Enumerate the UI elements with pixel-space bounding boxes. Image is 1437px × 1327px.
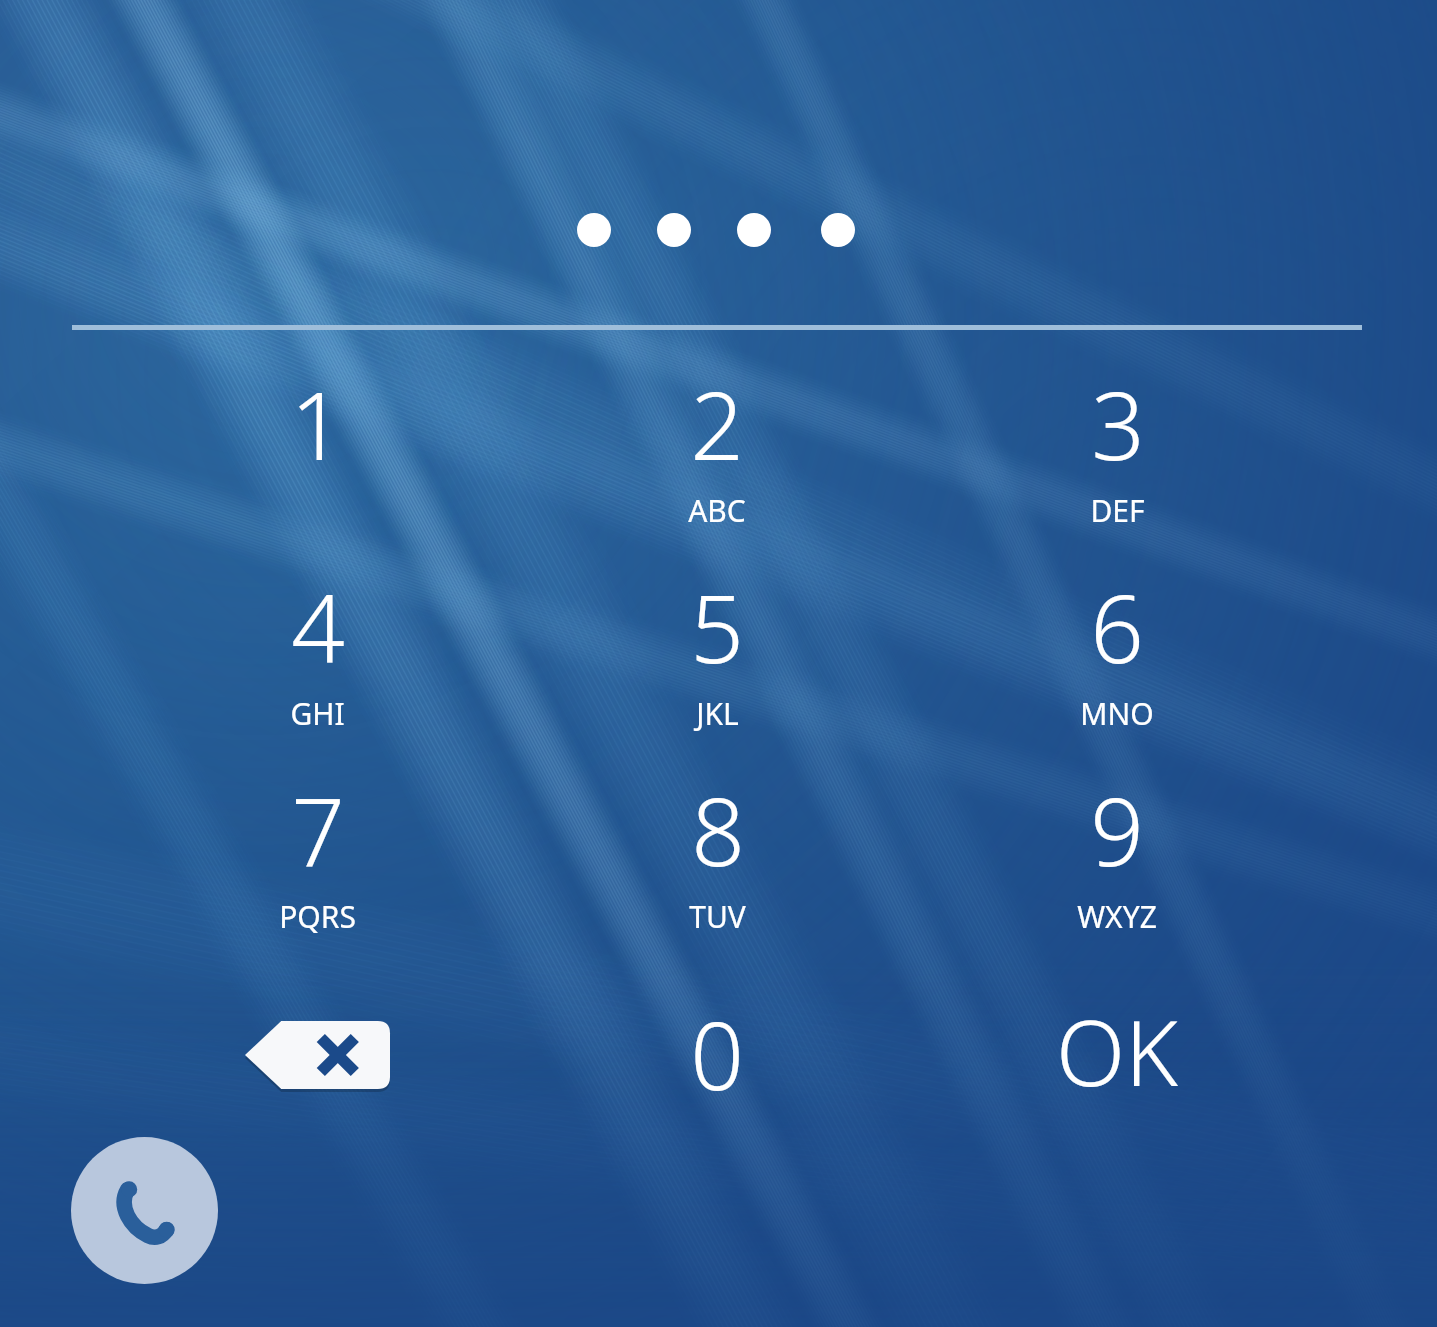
staticText: MNO <box>1080 693 1154 734</box>
staticText: 8 <box>691 766 745 894</box>
staticText: 7 <box>291 766 345 894</box>
staticText: DEF <box>1090 490 1145 531</box>
button[interactable]: Emergency call <box>71 1137 218 1284</box>
staticText: 9 <box>1090 766 1144 894</box>
button[interactable]: OK <box>977 990 1257 1140</box>
button[interactable]: 6 <box>987 563 1247 753</box>
staticText: 2 <box>690 360 744 488</box>
staticText: ABC <box>688 490 746 531</box>
staticText: 4 <box>291 563 345 691</box>
staticText: GHI <box>290 693 345 734</box>
button[interactable]: 2 <box>587 360 847 550</box>
staticText: 5 <box>690 563 744 691</box>
staticText: 1 <box>290 360 344 488</box>
button[interactable]: 9 <box>987 766 1247 956</box>
staticText: PQRS <box>279 896 356 937</box>
staticText: OK <box>1056 990 1178 1113</box>
staticText: 0 <box>690 990 744 1118</box>
staticText: 3 <box>1091 360 1145 488</box>
staticText: TUV <box>689 896 746 937</box>
button[interactable]: 5 <box>587 563 847 753</box>
button[interactable]: 1 <box>187 360 447 550</box>
button[interactable]: Backspace <box>187 985 447 1125</box>
button[interactable]: 8 <box>587 766 847 956</box>
button[interactable]: 4 <box>187 563 447 753</box>
button[interactable]: 7 <box>187 766 447 956</box>
staticText: 6 <box>1090 563 1144 691</box>
button[interactable]: 0 <box>587 990 847 1140</box>
staticText: WXYZ <box>1077 896 1157 937</box>
button[interactable]: 3 <box>987 360 1247 550</box>
staticText: JKL <box>696 693 739 734</box>
